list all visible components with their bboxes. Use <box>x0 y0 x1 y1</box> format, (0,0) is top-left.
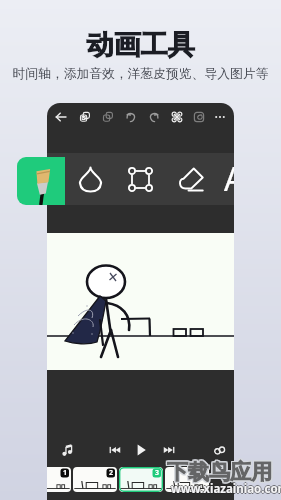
button[interactable]: Duplicate frame <box>75 107 95 127</box>
staticText: 动画工具 <box>0 28 281 62</box>
button[interactable]: Eraser <box>168 157 212 201</box>
staticText: 3 <box>155 468 160 478</box>
button[interactable]: Shape tool <box>118 157 162 201</box>
button[interactable]: Onion skin <box>167 107 187 127</box>
staticText: 下载鸟应用 <box>167 458 272 484</box>
staticText: 时间轴，添加音效，洋葱皮预览、导入图片等 <box>0 66 281 82</box>
button[interactable]: Frame 3 <box>119 467 163 492</box>
button[interactable]: Redo <box>144 107 164 127</box>
button[interactable]: Next frame <box>159 440 179 460</box>
staticText: A <box>224 157 234 201</box>
button[interactable]: Layers <box>189 107 209 127</box>
button[interactable]: Brush tool <box>17 157 65 205</box>
button[interactable]: Audio <box>58 440 78 460</box>
staticText: 下载鸟应用 <box>166 458 271 484</box>
staticText: 4 <box>201 468 206 478</box>
staticText: 2 <box>109 468 114 478</box>
staticText: 下载鸟应用 <box>168 459 273 485</box>
staticText: www.xiazainiao.com <box>172 481 281 497</box>
button[interactable]: Fill tool <box>68 157 112 201</box>
staticText: www.xiazainiao.com <box>171 482 281 498</box>
button[interactable]: Undo <box>121 107 141 127</box>
staticText: www.xiazainiao.com <box>171 480 281 496</box>
button[interactable]: Previous frame <box>105 440 125 460</box>
staticText: 下载鸟应用 <box>167 459 272 485</box>
button[interactable]: Back <box>51 107 71 127</box>
staticText: 下载鸟应用 <box>167 460 272 486</box>
staticText: www.xiazainiao.com <box>170 481 281 497</box>
staticText: 下载鸟应用 <box>166 459 271 485</box>
button[interactable]: More options <box>210 107 230 127</box>
staticText: 下载鸟应用 <box>166 460 271 486</box>
button[interactable]: Onion skin frames <box>210 440 230 460</box>
staticText: www.xiazainiao.com <box>171 481 281 497</box>
button[interactable]: Text tool <box>212 157 234 201</box>
button[interactable]: Paste frame <box>98 107 118 127</box>
staticText: 下载鸟应用 <box>168 458 273 484</box>
button[interactable]: Frame 2 <box>73 467 117 492</box>
button[interactable]: Play <box>131 440 151 460</box>
button[interactable]: Frame 1 <box>47 467 71 492</box>
staticText: 1 <box>63 468 68 478</box>
staticText: 下载鸟应用 <box>168 460 273 486</box>
button[interactable]: Frame 4 <box>165 467 209 492</box>
